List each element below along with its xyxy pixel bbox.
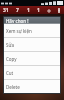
button[interactable]: Calendar month xyxy=(2,7,10,14)
staticText: 1 xyxy=(37,7,40,14)
button[interactable]: Add event xyxy=(45,7,52,14)
staticText: Cut xyxy=(6,70,14,76)
staticText: Hãy chọn ! xyxy=(6,18,29,24)
button[interactable]: Agenda view xyxy=(34,7,42,14)
staticText: 1 xyxy=(27,7,30,14)
button[interactable]: More options xyxy=(55,7,62,14)
button[interactable]: Xem sự kiện xyxy=(4,24,60,37)
button[interactable]: Sửa xyxy=(4,38,60,51)
button[interactable]: Delete xyxy=(4,80,60,93)
button[interactable]: Cut xyxy=(4,66,60,79)
staticText: Sửa xyxy=(6,42,15,48)
staticText: Xem sự kiện xyxy=(6,28,32,34)
button[interactable]: Copy xyxy=(4,52,60,65)
button[interactable]: Week view xyxy=(13,7,21,14)
button[interactable]: Day view xyxy=(24,7,32,14)
staticText: 31 xyxy=(3,7,9,14)
staticText: Delete xyxy=(6,84,20,90)
staticText: Copy xyxy=(6,56,17,62)
staticText: 7 xyxy=(16,7,19,14)
